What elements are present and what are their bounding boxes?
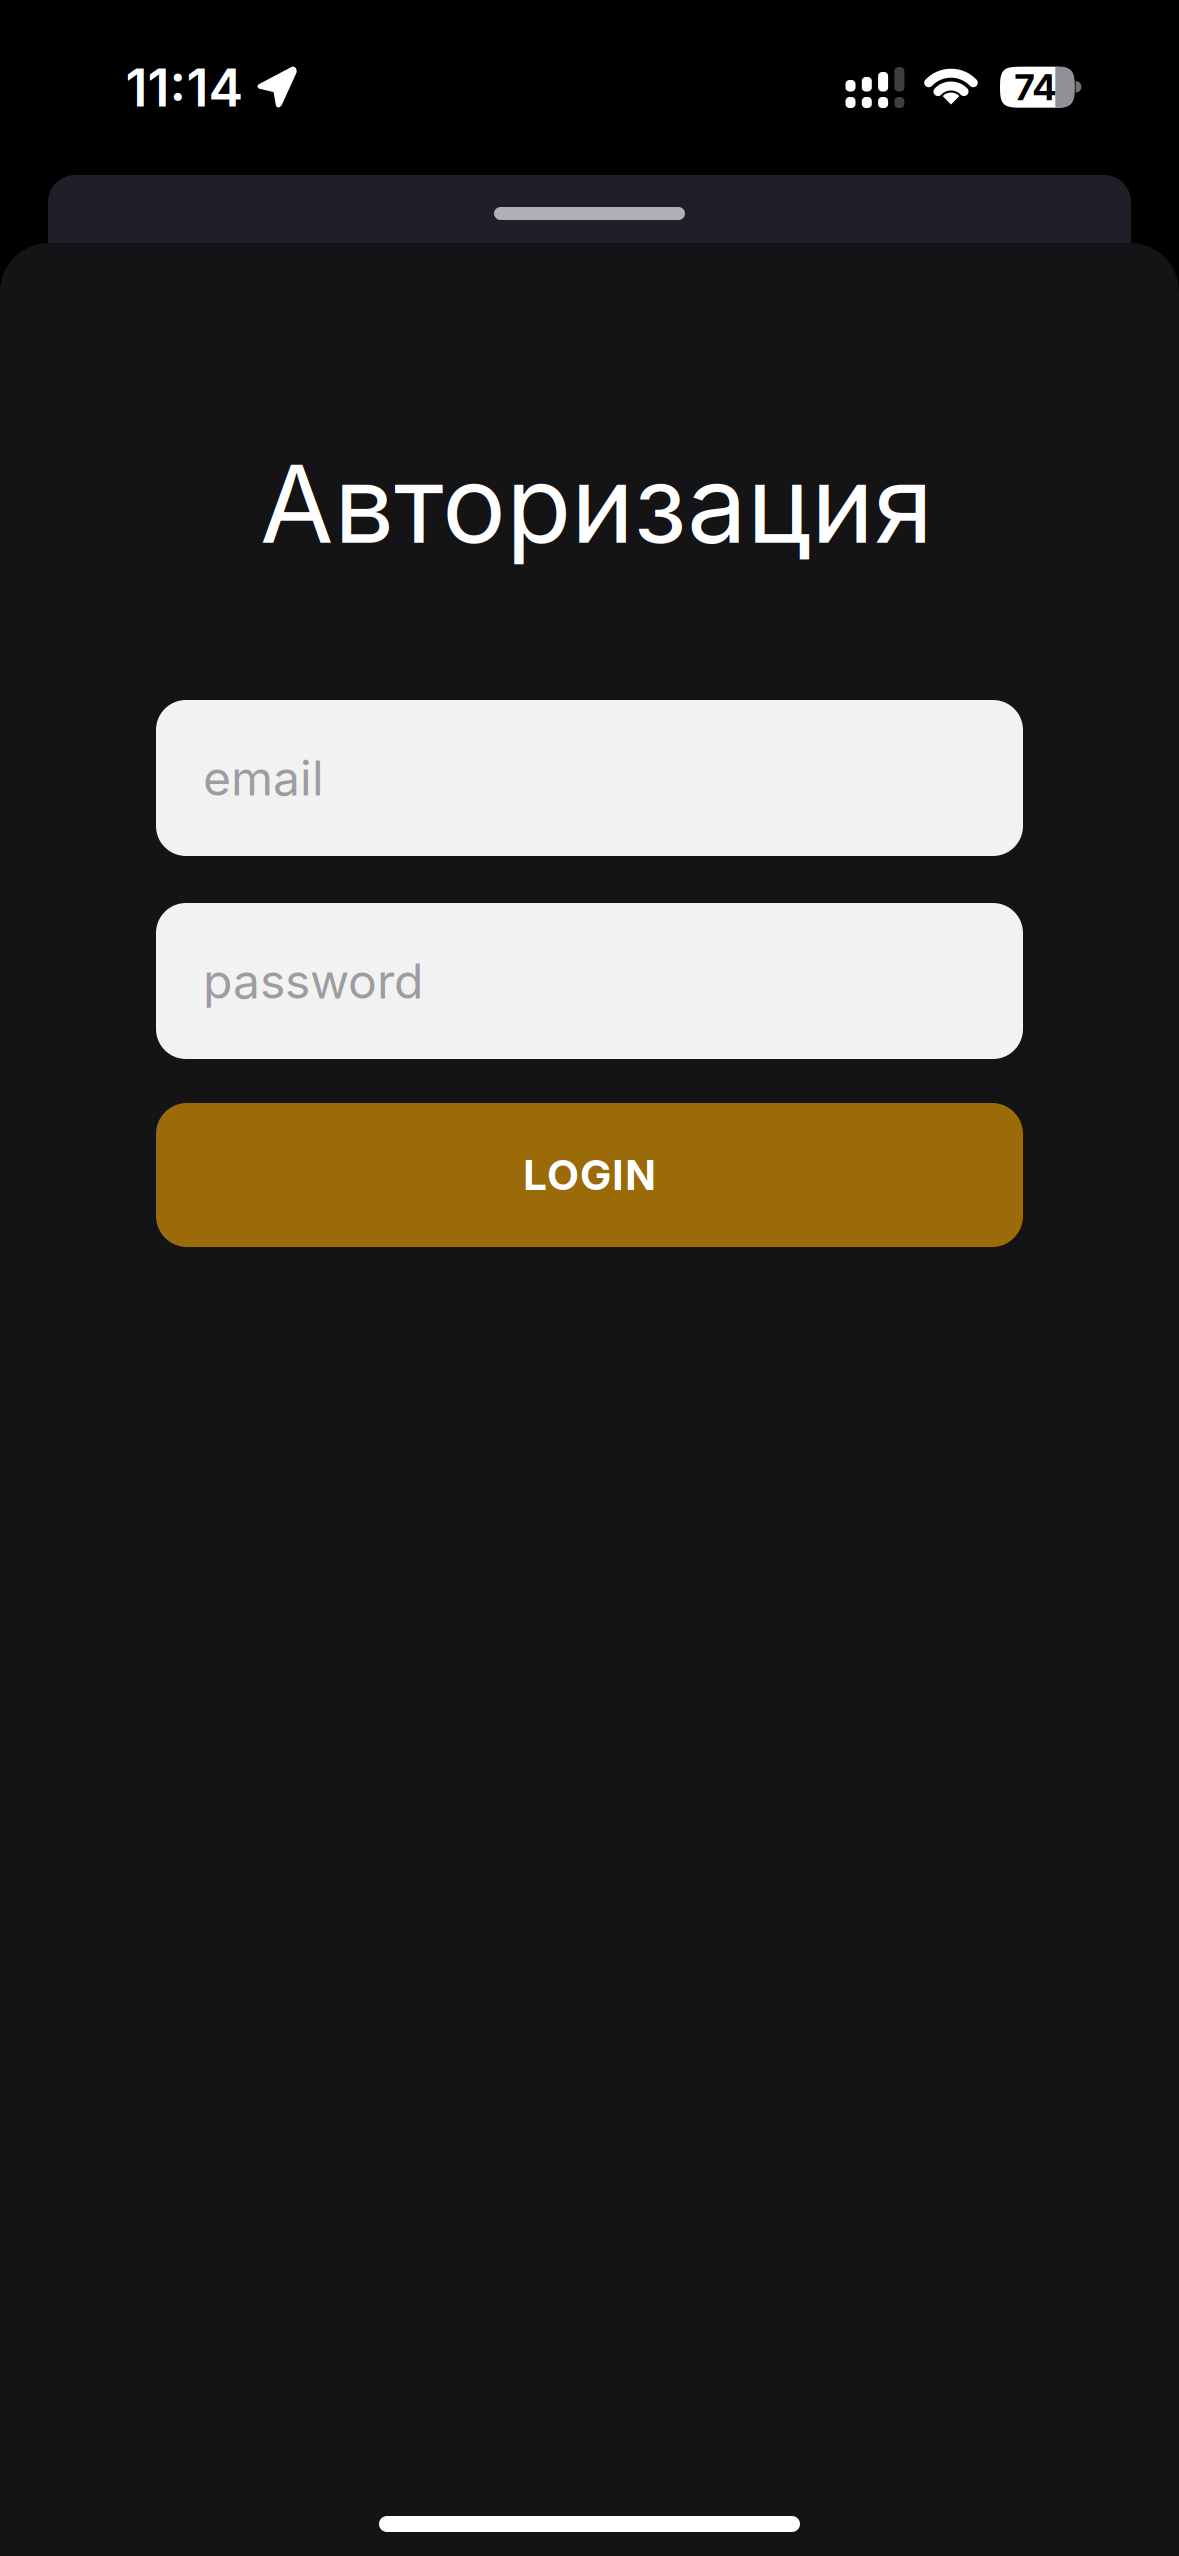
button[interactable]: email bbox=[156, 700, 1023, 856]
staticText: password bbox=[203, 953, 423, 1009]
button[interactable]: password bbox=[156, 903, 1023, 1059]
button[interactable]: LOGIN bbox=[156, 1103, 1023, 1247]
staticText: 11:14 bbox=[125, 57, 243, 118]
staticText: LOGIN bbox=[523, 1151, 655, 1199]
staticText: email bbox=[203, 750, 324, 806]
staticText: 74 bbox=[1014, 66, 1056, 108]
staticText: Авторизация bbox=[260, 441, 933, 567]
